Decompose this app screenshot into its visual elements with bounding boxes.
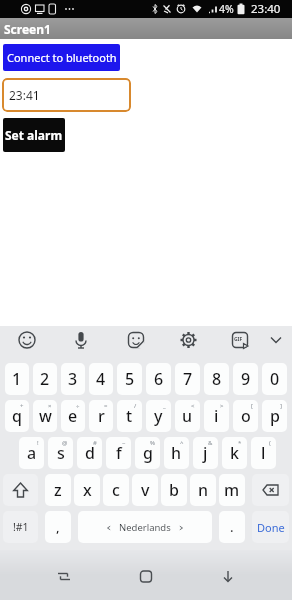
- staticText: &: [208, 439, 213, 447]
- staticText: j: [203, 442, 208, 464]
- button[interactable]: 4: [89, 363, 113, 395]
- button[interactable]: z: [45, 474, 71, 506]
- button[interactable]: d: [77, 437, 102, 469]
- button[interactable]: [175, 326, 203, 354]
- button[interactable]: 1: [5, 363, 29, 395]
- staticText: 3: [68, 368, 78, 390]
- staticText: ~: [122, 439, 126, 447]
- button[interactable]: r: [89, 400, 113, 432]
- button[interactable]: e: [61, 400, 85, 432]
- button[interactable]: v: [132, 474, 158, 506]
- button[interactable]: p: [262, 400, 287, 432]
- button[interactable]: [67, 326, 95, 354]
- staticText: 2: [40, 368, 50, 390]
- button[interactable]: h: [164, 437, 189, 469]
- staticText: *: [238, 439, 242, 447]
- staticText: l: [261, 442, 266, 464]
- button[interactable]: .: [219, 511, 245, 543]
- button[interactable]: k: [222, 437, 247, 469]
- button[interactable]: 9: [233, 363, 258, 395]
- button[interactable]: a: [19, 437, 44, 469]
- button[interactable]: [252, 474, 289, 506]
- staticText: 8: [212, 368, 222, 390]
- button[interactable]: 3: [61, 363, 85, 395]
- staticText: ÷: [76, 402, 80, 410]
- staticText: 23:41: [9, 87, 40, 103]
- button[interactable]: x: [74, 474, 100, 506]
- staticText: z: [54, 479, 62, 501]
- button[interactable]: [226, 326, 254, 354]
- staticText: 6: [154, 368, 164, 390]
- button[interactable]: l: [251, 437, 276, 469]
- button[interactable]: !#1: [3, 511, 38, 543]
- button[interactable]: Nederlands: [78, 511, 212, 543]
- button[interactable]: 2: [33, 363, 57, 395]
- button[interactable]: j: [193, 437, 218, 469]
- button[interactable]: 23:41: [2, 78, 131, 112]
- staticText: 9: [241, 368, 251, 390]
- button[interactable]: [3, 474, 38, 506]
- button[interactable]: 8: [204, 363, 229, 395]
- staticText: 1: [12, 368, 22, 390]
- button[interactable]: c: [103, 474, 129, 506]
- button[interactable]: Done: [252, 511, 289, 543]
- staticText: Nederlands: [119, 521, 171, 534]
- staticText: p: [270, 405, 280, 427]
- staticText: ^: [180, 439, 184, 447]
- staticText: o: [241, 405, 251, 427]
- button[interactable]: f: [106, 437, 131, 469]
- button[interactable]: [262, 326, 290, 354]
- staticText: >: [220, 402, 224, 410]
- staticText: 23:40: [251, 1, 281, 17]
- button[interactable]: ,: [45, 511, 71, 543]
- staticText: b: [169, 479, 179, 501]
- button[interactable]: o: [233, 400, 258, 432]
- staticText: f: [116, 442, 122, 464]
- button[interactable]: n: [190, 474, 216, 506]
- button[interactable]: [13, 326, 41, 354]
- staticText: 4: [96, 368, 106, 390]
- staticText: t: [126, 405, 133, 427]
- button[interactable]: t: [117, 400, 142, 432]
- staticText: Screen1: [4, 21, 51, 37]
- button[interactable]: q: [5, 400, 29, 432]
- staticText: Done: [257, 520, 285, 535]
- staticText: n: [198, 479, 209, 501]
- staticText: #: [93, 439, 97, 447]
- button[interactable]: 6: [146, 363, 171, 395]
- staticText: /: [134, 402, 137, 410]
- button[interactable]: g: [135, 437, 160, 469]
- button[interactable]: w: [33, 400, 57, 432]
- staticText: m: [224, 479, 240, 501]
- button[interactable]: s: [48, 437, 73, 469]
- button[interactable]: u: [175, 400, 200, 432]
- staticText: ×: [48, 402, 52, 410]
- staticText: d: [85, 442, 95, 464]
- staticText: g: [143, 442, 153, 464]
- staticText: +: [20, 402, 24, 410]
- button[interactable]: 5: [117, 363, 142, 395]
- button[interactable]: [0, 550, 98, 600]
- staticText: y: [154, 405, 163, 427]
- button[interactable]: [122, 326, 150, 354]
- button[interactable]: Set alarm: [3, 118, 65, 152]
- staticText: v: [141, 479, 150, 501]
- staticText: u: [182, 405, 193, 427]
- staticText: k: [230, 442, 239, 464]
- staticText: e: [68, 405, 78, 427]
- button[interactable]: 0: [262, 363, 287, 395]
- staticText: a: [27, 442, 37, 464]
- staticText: 0: [270, 368, 280, 390]
- button[interactable]: [195, 550, 292, 600]
- button[interactable]: [98, 550, 195, 600]
- button[interactable]: b: [161, 474, 187, 506]
- button[interactable]: 7: [175, 363, 200, 395]
- staticText: @: [62, 439, 68, 447]
- staticText: %: [150, 439, 155, 447]
- button[interactable]: i: [204, 400, 229, 432]
- staticText: i: [214, 405, 219, 427]
- staticText: Set alarm: [5, 127, 63, 143]
- button[interactable]: Connect to bluetooth: [3, 44, 120, 71]
- button[interactable]: y: [146, 400, 171, 432]
- button[interactable]: m: [219, 474, 245, 506]
